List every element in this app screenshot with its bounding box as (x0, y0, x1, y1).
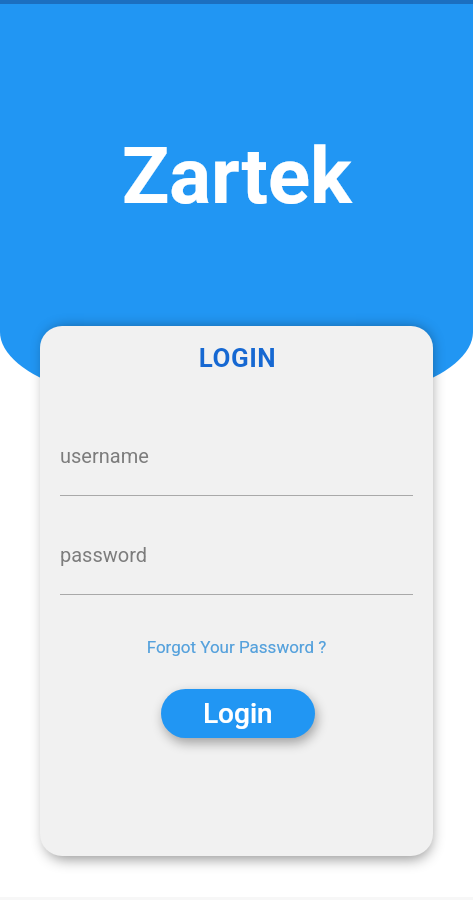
button[interactable]: Login (161, 689, 315, 738)
staticText: password (60, 543, 148, 566)
button[interactable]: Forgot Your Password ? (40, 637, 433, 657)
button[interactable]: password (60, 543, 413, 566)
staticText: LOGIN (41, 343, 433, 373)
staticText: Login (203, 697, 273, 730)
staticText: username (60, 444, 149, 467)
button[interactable]: username (60, 444, 413, 467)
staticText: Forgot Your Password ? (40, 637, 433, 657)
staticText: Zartek (122, 131, 352, 222)
